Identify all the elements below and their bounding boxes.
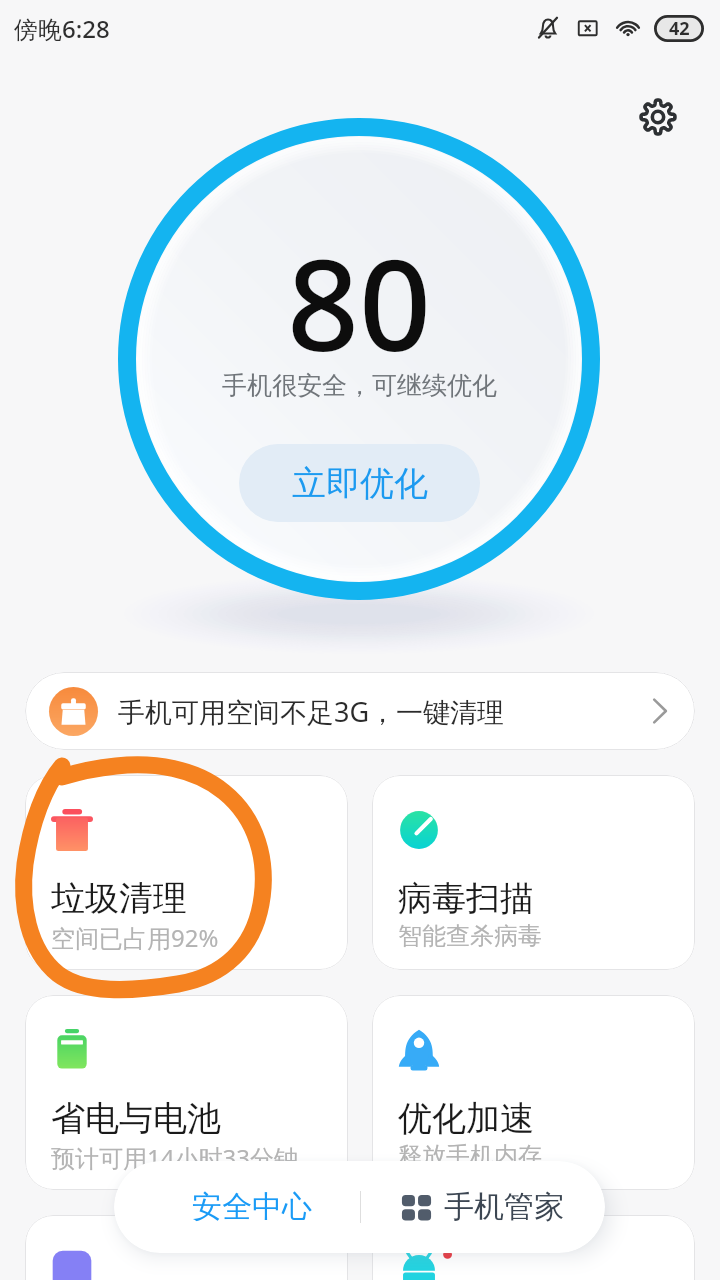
staticText: 省电与电池: [51, 1097, 221, 1140]
staticText: 手机很安全，可继续优化: [222, 370, 497, 401]
staticText: 42: [669, 16, 690, 41]
button[interactable]: Settings: [634, 93, 682, 141]
button[interactable]: 垃圾清理: [25, 775, 348, 970]
staticText: 立即优化: [292, 462, 428, 505]
button[interactable]: 手机管家: [375, 1161, 590, 1253]
staticText: 安全中心: [192, 1188, 312, 1226]
staticText: 垃圾清理: [51, 877, 187, 920]
staticText: 手机可用空间不足3G，一键清理: [118, 693, 505, 730]
staticText: 空间已占用92%: [51, 921, 219, 954]
button[interactable]: 立即优化: [239, 444, 480, 522]
button[interactable]: 省电与电池: [25, 995, 348, 1190]
staticText: 智能查杀病毒: [398, 921, 542, 951]
other: Wifi: [613, 13, 643, 43]
button[interactable]: 手机可用空间不足3G，一键清理: [25, 672, 695, 750]
staticText: 释放手机内存: [398, 1141, 542, 1171]
staticText: 病毒扫描: [398, 877, 534, 920]
other: Silent: [533, 13, 563, 43]
staticText: 傍晚6:28: [14, 12, 110, 45]
staticText: 预计可用14小时33分钟: [51, 1141, 298, 1174]
button[interactable]: 优化加速: [372, 995, 695, 1190]
button[interactable]: 手机助手: [372, 1215, 695, 1280]
staticText: 手机管家: [444, 1188, 564, 1226]
staticText: 80: [287, 216, 432, 388]
button[interactable]: 应用管理: [25, 1215, 348, 1280]
button[interactable]: 病毒扫描: [372, 775, 695, 970]
other: No SIM: [574, 14, 602, 42]
button[interactable]: 安全中心: [144, 1161, 359, 1253]
staticText: 优化加速: [398, 1097, 534, 1140]
